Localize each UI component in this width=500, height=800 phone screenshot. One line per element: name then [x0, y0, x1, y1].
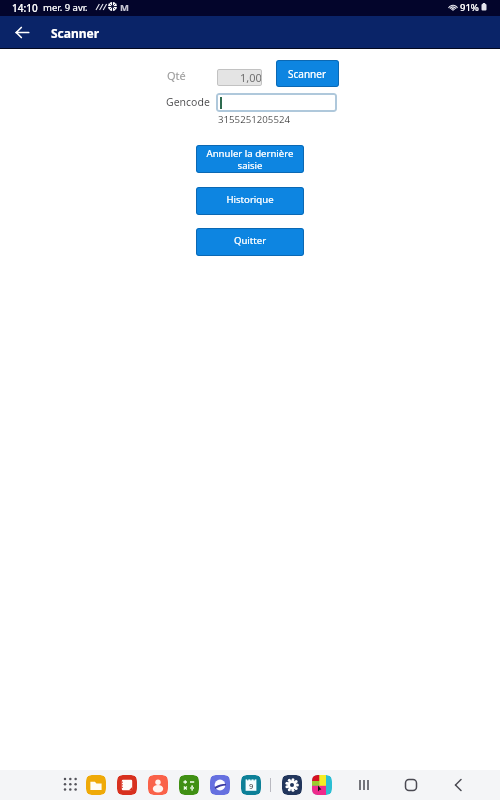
button[interactable]	[216, 93, 337, 112]
button[interactable]: Settings	[282, 775, 302, 795]
button[interactable]: Quitter	[196, 228, 304, 256]
staticText: 1,00	[240, 70, 262, 85]
button[interactable]: Recent apps	[354, 775, 374, 795]
button[interactable]: My Files	[86, 775, 106, 795]
button[interactable]: Back	[12, 22, 33, 43]
staticText: M	[120, 1, 129, 14]
button[interactable]: All apps	[61, 775, 79, 793]
staticText: Quitter	[202, 234, 298, 247]
button[interactable]: Scanner	[276, 60, 339, 87]
staticText: 3155251205524	[218, 113, 291, 126]
button[interactable]: Calculator	[179, 775, 199, 795]
staticText: mer. 9 avr.	[43, 1, 88, 14]
button[interactable]: Notes	[117, 775, 137, 795]
button[interactable]: Paint	[312, 775, 332, 795]
staticText: 14:10	[12, 1, 38, 15]
staticText: Gencode	[166, 95, 210, 109]
staticText: Historique	[202, 193, 298, 206]
button[interactable]: Calendar	[241, 775, 261, 795]
staticText: Scanner	[51, 25, 100, 41]
staticText: 91%	[460, 1, 479, 14]
staticText: Annuler la dernière saisie	[202, 147, 298, 172]
button[interactable]: Internet	[210, 775, 230, 795]
button[interactable]: Annuler la dernière saisie	[196, 145, 304, 173]
staticText: Qté	[167, 68, 186, 83]
button[interactable]: Back	[448, 775, 468, 795]
button[interactable]: Home	[401, 775, 421, 795]
button[interactable]: Contacts	[148, 775, 168, 795]
staticText: Scanner	[288, 67, 327, 81]
button[interactable]: Historique	[196, 187, 304, 215]
staticText: 9	[249, 781, 254, 791]
